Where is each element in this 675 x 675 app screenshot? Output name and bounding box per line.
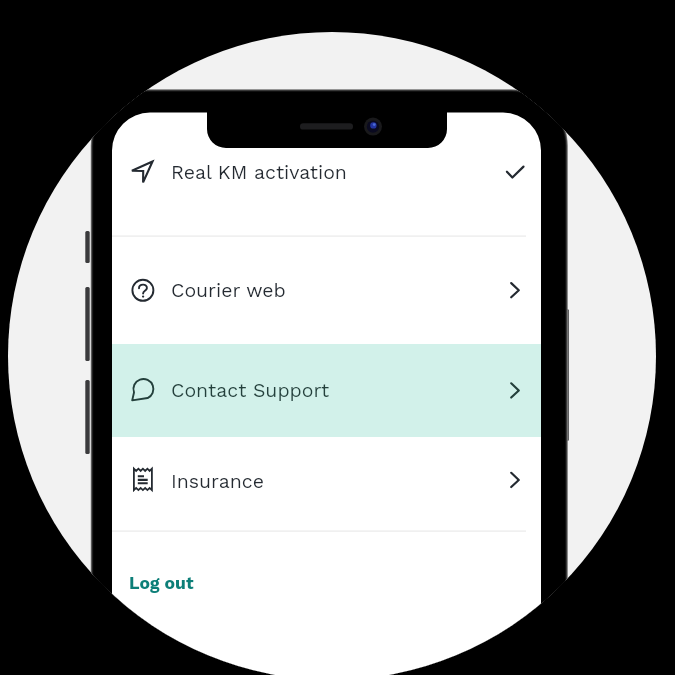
button[interactable]: Insurance (112, 437, 541, 531)
button[interactable]: Log out (112, 557, 232, 609)
staticText: Insurance (171, 470, 265, 493)
staticText: Real KM activation (171, 161, 347, 184)
button[interactable]: Real KM activation (112, 113, 541, 236)
button[interactable]: Courier web (112, 236, 541, 344)
staticText: Courier web (171, 279, 286, 302)
staticText: Log out (129, 573, 194, 594)
staticText: Contact Support (171, 379, 330, 402)
other: Insurance (487, 437, 541, 531)
other: Courier web (487, 236, 541, 344)
other: Real KM activation (487, 113, 541, 236)
button[interactable]: Contact Support (112, 344, 541, 437)
other: Contact Support (487, 344, 541, 437)
